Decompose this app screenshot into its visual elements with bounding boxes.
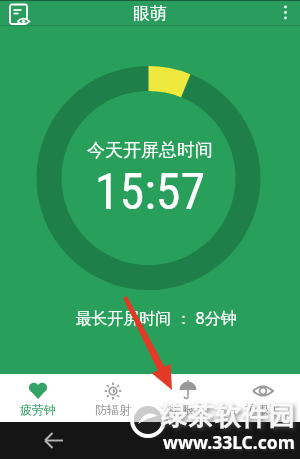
staticText: 15:57 bbox=[0, 163, 300, 222]
button[interactable] bbox=[36, 422, 72, 459]
button[interactable]: 护眼罩 bbox=[225, 374, 300, 422]
staticText: 护眼伞 bbox=[170, 402, 206, 417]
staticText: 防辐射 bbox=[95, 402, 131, 417]
button[interactable]: 防辐射 bbox=[75, 374, 150, 422]
staticText: www.33LC.com bbox=[163, 430, 295, 454]
staticText: 护眼罩 bbox=[245, 402, 281, 417]
staticText: 绿茶软件园 bbox=[160, 400, 295, 433]
staticText: 今天开屏总时间 bbox=[0, 139, 300, 162]
button[interactable] bbox=[0, 0, 34, 26]
button[interactable]: 疲劳钟 bbox=[0, 374, 75, 422]
staticText: 最长开屏时间 ： 8分钟 bbox=[6, 307, 300, 329]
button[interactable] bbox=[274, 0, 300, 26]
button[interactable]: 护眼伞 bbox=[150, 374, 225, 422]
staticText: 疲劳钟 bbox=[20, 402, 56, 417]
staticText: 眼萌 bbox=[133, 3, 167, 24]
